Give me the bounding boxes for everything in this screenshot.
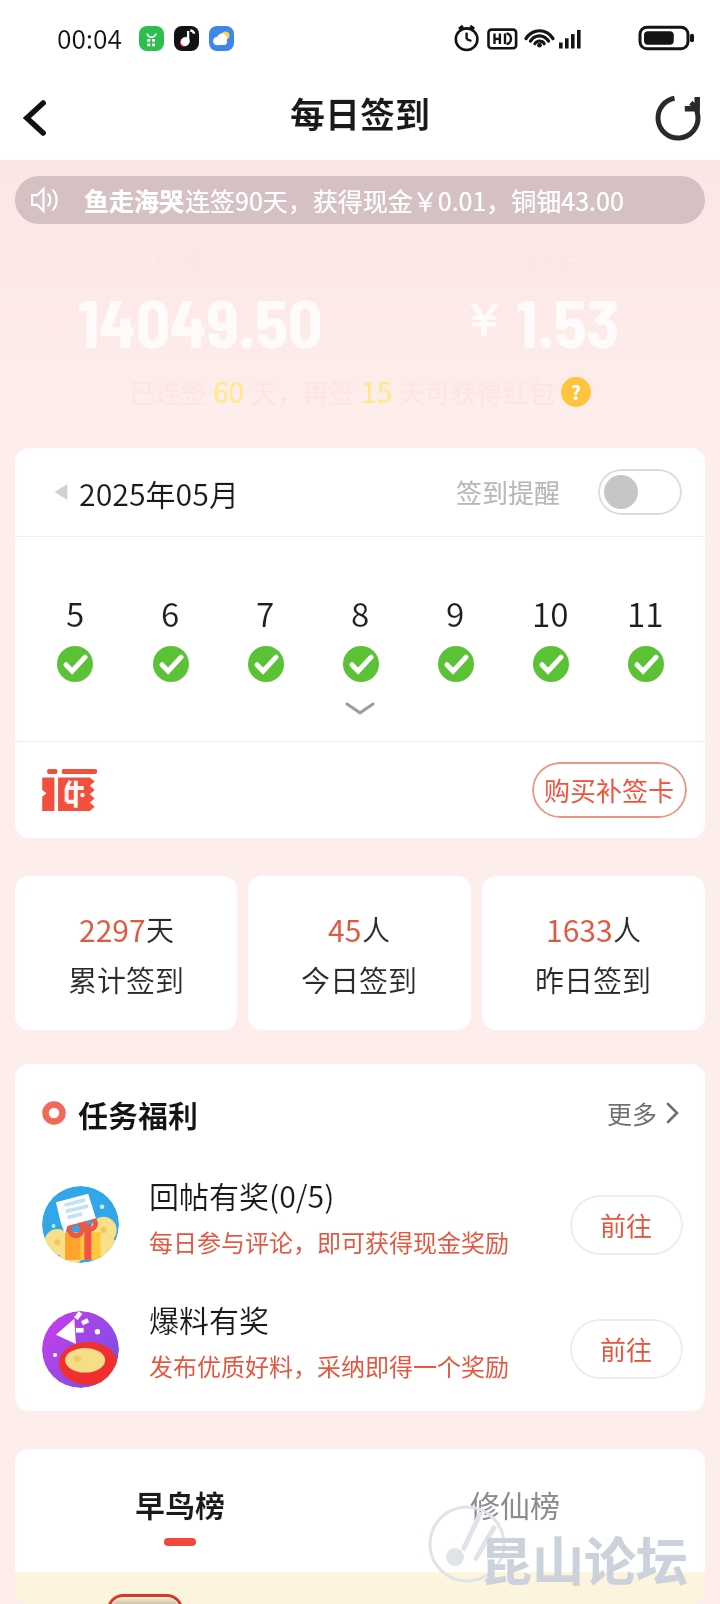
staticText: 每日参与评论，即可获得现金奖励 xyxy=(149,1224,509,1259)
staticText: 每日签到 xyxy=(290,87,431,138)
button[interactable]: 早鸟榜 xyxy=(135,1482,225,1546)
button[interactable]: 1633 xyxy=(482,876,705,1030)
staticText: 6 xyxy=(161,589,180,637)
staticText: 鱼走海哭 xyxy=(84,182,185,218)
button[interactable]: Back xyxy=(7,90,63,146)
staticText: 早鸟榜 xyxy=(135,1482,225,1525)
staticText: 今日签到 xyxy=(301,958,418,1000)
staticText: 1633 xyxy=(546,907,613,950)
staticText: ￥ xyxy=(461,294,505,349)
staticText: 爆料有奖 xyxy=(149,1297,269,1340)
staticText: 60 xyxy=(213,371,245,412)
staticText: 连签90天，获得现金￥0.01，铜钿43.00 xyxy=(185,182,624,218)
staticText: 回帖有奖(0/5) xyxy=(149,1173,335,1216)
staticText: 00:04 xyxy=(57,19,122,57)
staticText: 累计签到 xyxy=(68,958,185,1000)
staticText: 15 xyxy=(361,371,393,412)
button[interactable]: 2297 xyxy=(15,876,237,1030)
staticText: 昨日签到 xyxy=(535,958,652,1000)
staticText: 8 xyxy=(351,589,370,637)
button[interactable]: 7 xyxy=(218,589,313,682)
staticText: ? xyxy=(571,378,581,406)
staticText: 任务福利 xyxy=(78,1092,198,1135)
button[interactable]: Previous month xyxy=(53,482,69,502)
button[interactable]: Refresh xyxy=(650,90,706,146)
button[interactable]: 回帖有奖(0/5) xyxy=(42,1162,683,1287)
staticText: 更多 xyxy=(607,1095,658,1131)
button[interactable]: 前往 xyxy=(570,1195,683,1255)
staticText: 签到提醒 xyxy=(456,473,561,511)
button[interactable]: 5 xyxy=(27,589,123,682)
button[interactable]: 6 xyxy=(123,589,218,682)
button[interactable]: 前往 xyxy=(570,1319,683,1379)
button[interactable]: Help xyxy=(561,377,591,407)
staticText: 2297 xyxy=(79,907,146,950)
staticText: 昆山论坛 xyxy=(480,1521,689,1596)
staticText: 人 xyxy=(613,909,642,950)
staticText: 人 xyxy=(362,909,391,950)
button[interactable]: 购买补签卡 xyxy=(532,762,687,818)
button[interactable]: 9 xyxy=(408,589,503,682)
staticText: 修仙榜 xyxy=(470,1482,560,1525)
button[interactable]: 45 xyxy=(248,876,471,1030)
staticText: 9 xyxy=(446,589,465,637)
staticText: 1.53 xyxy=(516,281,620,361)
staticText: 5 xyxy=(66,589,85,637)
staticText: 购买补签卡 xyxy=(544,771,675,809)
staticText: 发布优质好料，采纳即得一个奖励 xyxy=(149,1348,509,1383)
staticText: 14049.50 xyxy=(78,281,323,361)
staticText: 天 xyxy=(146,909,175,950)
button[interactable]: 10 xyxy=(503,589,598,682)
button[interactable]: 更多 xyxy=(607,1095,679,1131)
staticText: 10 xyxy=(532,589,569,637)
staticText: 2025年05月 xyxy=(79,471,239,514)
staticText: 7 xyxy=(256,589,275,637)
button[interactable]: 爆料有奖 xyxy=(42,1287,683,1411)
staticText: 前往 xyxy=(600,1330,653,1368)
button[interactable]: Sign-in reminder toggle xyxy=(598,469,682,515)
staticText: 45 xyxy=(328,907,362,950)
button[interactable]: Expand xyxy=(345,700,375,716)
staticText: 前往 xyxy=(600,1206,653,1244)
button[interactable]: 8 xyxy=(313,589,408,682)
button[interactable]: 鱼走海哭 xyxy=(15,176,705,224)
staticText: 11 xyxy=(627,589,664,637)
button[interactable]: 修仙榜 xyxy=(470,1482,560,1525)
button[interactable]: 11 xyxy=(598,589,693,682)
